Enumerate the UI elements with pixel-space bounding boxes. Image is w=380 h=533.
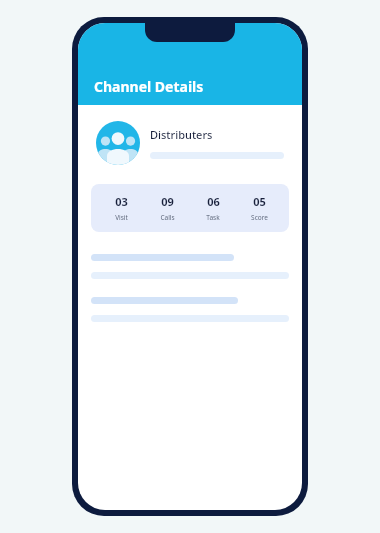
staticText: 03 bbox=[115, 194, 128, 209]
button[interactable]: Distributers group avatar bbox=[96, 121, 284, 165]
staticText: Distributers bbox=[150, 127, 213, 142]
button[interactable]: 03 bbox=[91, 184, 289, 232]
button[interactable]: 05 bbox=[237, 194, 281, 222]
staticText: Calls bbox=[160, 213, 175, 222]
button[interactable]: 06 bbox=[191, 194, 235, 222]
staticText: 05 bbox=[253, 194, 266, 209]
staticText: Score bbox=[251, 213, 268, 222]
button[interactable]: Distributers group avatar bbox=[96, 121, 140, 165]
button[interactable]: 09 bbox=[145, 194, 189, 222]
staticText: Visit bbox=[115, 213, 128, 222]
staticText: Channel Details bbox=[94, 77, 204, 96]
staticText: Task bbox=[206, 213, 220, 222]
staticText: 06 bbox=[207, 194, 220, 209]
button[interactable]: 03 bbox=[99, 194, 143, 222]
staticText: 09 bbox=[161, 194, 174, 209]
